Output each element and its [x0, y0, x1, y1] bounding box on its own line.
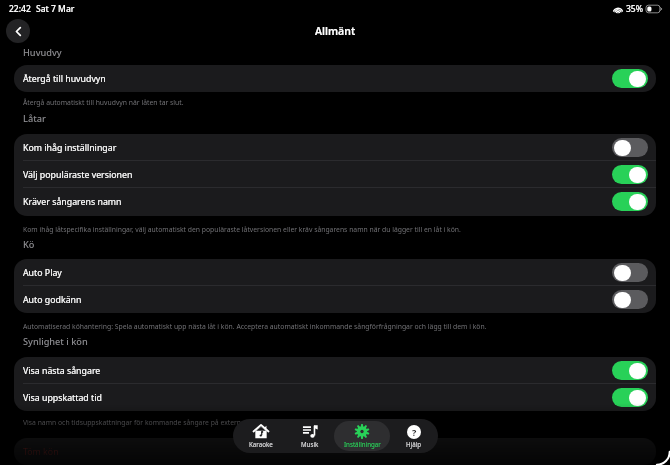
staticText: Välj populäraste versionen: [23, 169, 133, 181]
staticText: Visa namn och tidsuppskattningar för kom…: [23, 418, 274, 427]
staticText: Kräver sångarens namn: [23, 196, 122, 208]
button[interactable]: Visa uppskattad tid: [14, 384, 656, 411]
button[interactable]: Karaoke: [237, 421, 285, 451]
staticText: Karaoke: [249, 440, 273, 448]
staticText: Huvudvy: [23, 46, 62, 59]
button[interactable]: Auto godkänn: [14, 286, 656, 313]
staticText: Synlighet i kön: [23, 335, 88, 348]
staticText: Låtar: [23, 112, 46, 125]
button[interactable]: ?: [394, 421, 434, 451]
button[interactable]: Visa nästa sångare: [14, 357, 656, 384]
staticText: Auto Play: [23, 267, 62, 279]
staticText: Kö: [23, 238, 35, 251]
button[interactable]: Kräver sångarens namn: [14, 188, 656, 215]
staticText: Automatiserad köhantering: Spela automat…: [23, 322, 487, 331]
staticText: Kom ihåg låtspecifika inställningar, väl…: [23, 225, 461, 234]
staticText: Visa nästa sångare: [23, 365, 101, 377]
button[interactable]: Inställningar: [334, 421, 390, 451]
staticText: Kom ihåg inställningar: [23, 142, 117, 154]
button[interactable]: Back: [6, 19, 30, 43]
staticText: 22:42: [9, 3, 31, 15]
staticText: Auto godkänn: [23, 294, 82, 306]
staticText: Återgå till huvudvyn: [23, 73, 106, 85]
staticText: 35%: [626, 3, 643, 15]
button[interactable]: Kom ihåg inställningar: [14, 134, 656, 161]
button[interactable]: Töm kön: [14, 438, 656, 465]
staticText: ?: [412, 426, 417, 438]
button[interactable]: Auto Play: [14, 259, 656, 286]
staticText: Inställningar: [344, 440, 381, 448]
button[interactable]: Musik: [289, 421, 331, 451]
button[interactable]: Välj populäraste versionen: [14, 161, 656, 188]
staticText: Musik: [301, 440, 319, 448]
staticText: Visa uppskattad tid: [23, 392, 102, 404]
button[interactable]: Återgå till huvudvyn: [14, 65, 656, 92]
staticText: Töm kön: [23, 446, 59, 458]
staticText: Hjälp: [406, 440, 422, 448]
staticText: Sat 7 Mar: [36, 3, 75, 15]
staticText: Återgå automatiskt till huvudvyn när låt…: [23, 98, 184, 107]
staticText: Allmänt: [315, 24, 356, 38]
